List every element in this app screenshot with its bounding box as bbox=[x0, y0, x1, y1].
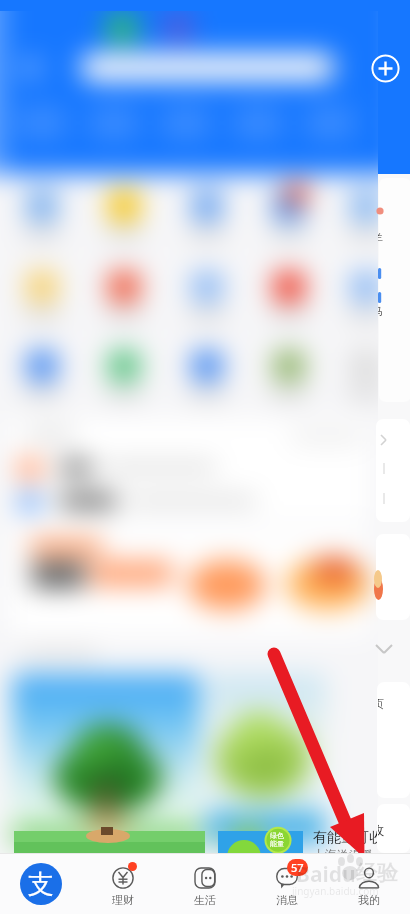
staticText: 收 bbox=[378, 822, 384, 838]
staticText: 上海送温暖 bbox=[313, 847, 373, 862]
button[interactable]: 我的 bbox=[328, 853, 410, 914]
staticText: 我的 bbox=[358, 893, 380, 907]
staticText: 羊 bbox=[378, 231, 383, 245]
staticText: 绿色 能量 bbox=[270, 831, 284, 848]
button[interactable]: 首页 bbox=[0, 853, 82, 914]
button[interactable]: 生活 bbox=[164, 853, 246, 914]
staticText: 57 bbox=[291, 860, 304, 875]
button[interactable]: 57 bbox=[246, 853, 328, 914]
staticText: 页 bbox=[378, 697, 384, 711]
staticText: 支 bbox=[28, 868, 54, 901]
staticText: 生活 bbox=[194, 893, 216, 907]
staticText: jingyan.baidu.com bbox=[292, 884, 379, 898]
staticText: 马 bbox=[378, 304, 383, 318]
button[interactable]: Add bbox=[371, 54, 400, 83]
staticText: 经验 bbox=[356, 860, 398, 886]
staticText: 理财 bbox=[112, 893, 134, 907]
staticText: 有能量可收 bbox=[313, 829, 383, 847]
button[interactable]: 理财 bbox=[82, 853, 164, 914]
staticText: 消息 bbox=[276, 893, 298, 907]
staticText: Baidu bbox=[296, 860, 356, 889]
